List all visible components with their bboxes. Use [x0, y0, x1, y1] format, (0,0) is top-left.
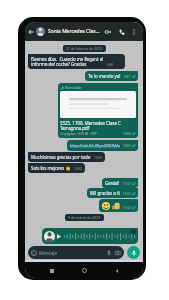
staticText: 10:01	[123, 144, 131, 148]
button[interactable]: More options	[129, 25, 139, 38]
button[interactable]: Genial!	[102, 178, 138, 188]
staticText: 11:01	[123, 192, 131, 196]
staticText: 3325. 1700. Mercedes Clase C Tarragona.p…	[60, 120, 121, 131]
staticText: 10:00	[123, 132, 131, 136]
staticText: Muchísimas gracias por todo	[31, 154, 91, 160]
button[interactable]: Back	[25, 26, 36, 37]
button[interactable]: 11:02	[99, 199, 138, 212]
staticText: Mensaje	[39, 250, 58, 256]
button[interactable]: Mensaje	[28, 246, 124, 259]
button[interactable]: Buenos días. Cuando me llegará el inform…	[28, 54, 125, 69]
button[interactable]: Home	[79, 265, 90, 276]
button[interactable]: Muchísimas gracias por todo	[28, 152, 105, 162]
staticText: Buenos días. Cuando me llegará el inform…	[31, 56, 104, 67]
staticText: 11:02	[123, 206, 131, 210]
staticText: 9:41	[124, 75, 131, 79]
staticText: Te lo mando ya!	[88, 73, 121, 79]
staticText: 11:01	[123, 182, 131, 186]
staticText: Reenviado	[65, 85, 82, 90]
button[interactable]: Sois los mejores 👏	[28, 163, 85, 173]
button[interactable]	[42, 228, 138, 244]
staticText: 12 páginas • 579 kB • PDF	[60, 132, 97, 136]
button[interactable]: Recent apps	[46, 265, 57, 276]
staticText: Sonia Mercedes Clas...	[48, 28, 101, 35]
button[interactable]: Call	[115, 25, 129, 38]
staticText: Genial!	[105, 180, 120, 186]
button[interactable]: Mil gracias a ti	[87, 188, 138, 198]
staticText: 10:00	[94, 156, 102, 160]
button[interactable]: Back	[111, 265, 122, 276]
staticText: 9:40	[107, 63, 114, 67]
staticText: 27 de febrero de 2023	[66, 46, 103, 51]
staticText: 3 de marzo de 2023	[68, 215, 101, 220]
button[interactable]: Reenviado	[58, 83, 138, 138]
button[interactable]: Te lo mando ya!	[85, 71, 138, 81]
button[interactable]: Contact photo	[36, 27, 45, 36]
staticText: Sois los mejores 👏	[31, 165, 71, 171]
staticText: Mil gracias a ti	[90, 190, 120, 196]
staticText: 10:00	[74, 167, 82, 171]
button[interactable]: https://wkt.li/t-88ywQRDfM4o	[67, 140, 138, 151]
button[interactable]: Record voice message	[127, 246, 140, 259]
staticText: https://wkt.li/t-88ywQRDfM4o	[70, 143, 121, 148]
button[interactable]: Video call	[101, 25, 115, 38]
